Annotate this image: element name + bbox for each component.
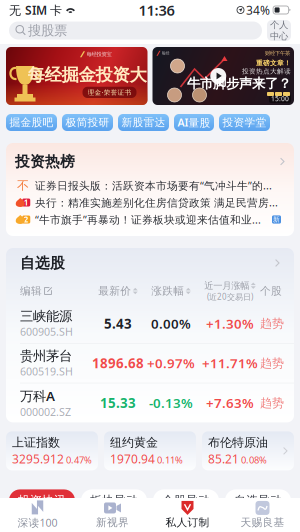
staticText: 投资热点大解读 <box>242 67 291 75</box>
button[interactable]: AI量股 <box>174 114 214 131</box>
button[interactable]: 投资学堂 <box>219 114 270 131</box>
button[interactable]: 新股雷达 <box>118 114 169 131</box>
staticText: 天赐良基 <box>240 516 284 529</box>
staticText: 万科A <box>20 387 55 405</box>
staticText: 无 SIM 卡 <box>9 2 62 18</box>
staticText: 个股异动 <box>162 493 210 508</box>
button[interactable]: 纽约黄金 <box>104 431 196 470</box>
staticText: 趋势 <box>260 316 284 331</box>
staticText: 近一月涨幅 <box>204 280 249 291</box>
staticText: 编辑 <box>20 284 42 297</box>
button[interactable]: 万科A <box>6 383 294 422</box>
staticText: 投资热榜 <box>15 152 75 170</box>
button[interactable]: 编辑 <box>20 284 94 297</box>
staticText: 600905.SH <box>20 325 73 339</box>
staticText: 每经投资宝 <box>86 51 111 58</box>
button[interactable]: 极简投研 <box>62 114 113 131</box>
staticText: 三峡能源 <box>20 308 72 325</box>
staticText: 0.08% <box>241 454 267 466</box>
staticText: 000002.SZ <box>20 405 71 419</box>
staticText: 1970.94 <box>110 451 155 467</box>
staticText: (近20交易日) <box>207 291 253 302</box>
staticText: 布伦特原油 <box>208 435 268 450</box>
staticText: 0.47% <box>66 454 92 466</box>
staticText: 每经 <box>161 51 169 56</box>
staticText: 牛市脚步声来了？ <box>187 75 291 92</box>
button[interactable]: 每经投资宝 <box>6 47 147 105</box>
staticText: 自选股 <box>20 254 65 272</box>
staticText: 0.11% <box>157 454 183 466</box>
button[interactable]: 个人 <box>267 20 291 41</box>
staticText: 11:36 <box>138 0 174 20</box>
staticText: 5.43 <box>104 315 132 332</box>
staticText: +0.97% <box>147 354 195 372</box>
button[interactable]: 每经 <box>152 47 294 105</box>
staticText: 15:00 <box>271 94 289 103</box>
staticText: 深读100 <box>17 515 57 530</box>
staticText: 涨跌幅 <box>151 284 184 297</box>
staticText: +7.63% <box>206 394 254 412</box>
staticText: 1 <box>24 197 29 208</box>
staticText: 搜股票 <box>28 22 67 39</box>
button[interactable]: 2 <box>15 211 285 228</box>
button[interactable]: 天赐良基 <box>225 498 300 532</box>
button[interactable]: 投资热榜 <box>15 146 285 177</box>
staticText: AI量股 <box>177 115 210 130</box>
staticText: 新视界 <box>96 516 129 529</box>
staticText: 趋势 <box>260 356 284 370</box>
button[interactable]: 贵州茅台 <box>6 344 294 383</box>
staticText: 新 <box>273 215 280 224</box>
staticText: 个人 <box>270 19 288 30</box>
staticText: 2 <box>24 214 29 225</box>
staticText: -0.13% <box>149 394 193 412</box>
staticText: +11.71% <box>202 354 258 372</box>
staticText: 34% <box>246 2 270 18</box>
button[interactable]: 私人订制 <box>150 498 225 532</box>
staticText: 个股 <box>260 284 282 297</box>
staticText: 重磅文章！ <box>256 59 291 67</box>
staticText: 85.21 <box>208 451 239 467</box>
button[interactable]: 布伦特原油 <box>202 431 294 470</box>
button[interactable]: 掘金股吧 <box>6 114 57 131</box>
staticText: 证券日报头版：活跃资本市场要有“气冲斗牛”的勇气 <box>35 178 281 193</box>
button[interactable]: 自选异动 <box>225 489 291 511</box>
staticText: 新股雷达 <box>121 116 165 129</box>
button[interactable]: 上证指数 <box>6 431 98 470</box>
staticText: 投资学堂 <box>222 116 266 129</box>
button[interactable]: 1 <box>15 194 285 211</box>
button[interactable]: 自选股 <box>6 248 294 278</box>
staticText: 1896.68 <box>92 354 144 372</box>
staticText: “牛市旗手”再暴动！证券板块或迎来估值和业绩双升。 <box>35 212 268 227</box>
staticText: 财经下午茶 <box>265 50 290 57</box>
button[interactable]: 板块异动 <box>81 489 147 511</box>
staticText: 贵州茅台 <box>20 348 72 364</box>
staticText: 600519.SH <box>20 364 73 378</box>
staticText: 投资快讯 <box>18 493 66 508</box>
button[interactable]: 投资快讯 <box>9 489 75 511</box>
staticText: 上证指数 <box>12 435 60 450</box>
button[interactable]: 不 <box>15 177 285 194</box>
staticText: +1.30% <box>206 315 254 332</box>
staticText: 15.33 <box>100 394 136 412</box>
staticText: 纽约黄金 <box>110 435 158 450</box>
staticText: 中心 <box>270 30 288 42</box>
staticText: 私人订制 <box>165 516 209 529</box>
button[interactable]: 三峡能源 <box>6 304 294 343</box>
staticText: 0.00% <box>151 315 191 332</box>
staticText: 板块异动 <box>90 493 138 508</box>
button[interactable]: 新视界 <box>75 498 150 532</box>
staticText: 3295.912 <box>12 451 64 467</box>
button[interactable]: 搜股票 <box>9 21 262 39</box>
staticText: 自选异动 <box>234 493 282 508</box>
staticText: 最新价 <box>98 284 131 297</box>
staticText: 极简投研 <box>65 116 109 129</box>
button[interactable]: 深读100 <box>0 498 75 532</box>
staticText: 每经掘金投资大 <box>27 64 146 86</box>
staticText: 掘金股吧 <box>9 116 53 129</box>
staticText: 不 <box>17 178 29 193</box>
staticText: 央行：精准实施差别化住房信贷政策 满足民营房地产企... <box>35 195 281 210</box>
staticText: 趋势 <box>260 395 284 410</box>
button[interactable]: 个股异动 <box>153 489 219 511</box>
staticText: 理金·荣誉证书 <box>87 88 131 97</box>
